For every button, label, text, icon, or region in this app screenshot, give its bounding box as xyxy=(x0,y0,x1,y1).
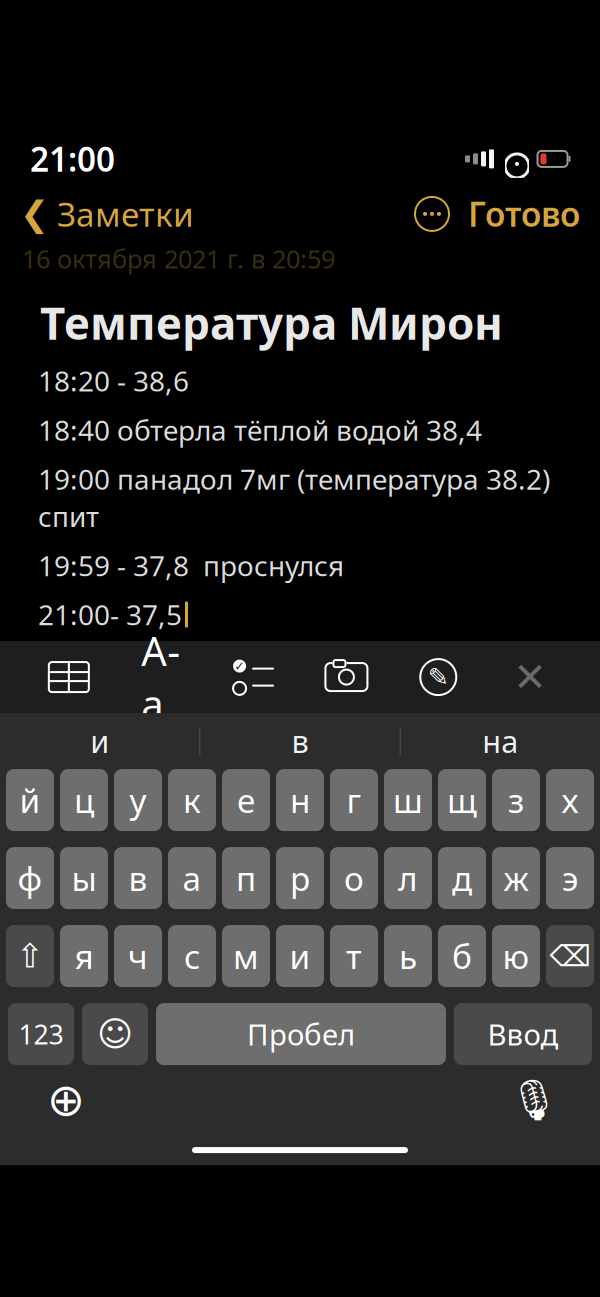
button[interactable]: Список xyxy=(231,659,277,695)
staticText: ч xyxy=(128,934,148,978)
button[interactable]: з xyxy=(492,769,540,831)
staticText: р xyxy=(290,856,310,900)
staticText: Готово xyxy=(468,192,580,236)
staticText: 21:00- 37,5 xyxy=(38,596,182,633)
button[interactable]: д xyxy=(438,847,486,909)
button[interactable]: и xyxy=(276,925,324,987)
button[interactable]: Формат xyxy=(138,658,184,696)
button[interactable]: Сменить язык xyxy=(38,1072,94,1128)
staticText: н xyxy=(290,778,310,822)
staticText: я xyxy=(74,934,93,978)
staticText: ⇧ xyxy=(16,937,44,975)
button[interactable]: и xyxy=(0,713,199,769)
staticText: ❮ xyxy=(20,194,49,233)
staticText: ю xyxy=(502,934,529,978)
staticText: х xyxy=(561,778,578,822)
button[interactable]: л xyxy=(384,847,432,909)
staticText: Заметки xyxy=(57,192,194,236)
staticText: ⊕ xyxy=(47,1074,85,1126)
button[interactable]: ж xyxy=(492,847,540,909)
staticText: на xyxy=(482,721,518,761)
staticText: 16 октября 2021 г. в 20:59 xyxy=(22,242,335,275)
button[interactable]: щ xyxy=(438,769,486,831)
button[interactable]: п xyxy=(222,847,270,909)
button[interactable]: Готово xyxy=(454,186,580,242)
button[interactable]: на xyxy=(401,713,600,769)
staticText: у xyxy=(129,778,146,822)
button[interactable]: Камера xyxy=(323,659,369,695)
button[interactable]: в xyxy=(200,713,400,769)
staticText: ы xyxy=(71,856,96,900)
button[interactable]: в xyxy=(114,847,162,909)
staticText: й xyxy=(19,778,40,822)
button[interactable]: р xyxy=(276,847,324,909)
button[interactable]: н xyxy=(276,769,324,831)
staticText: в xyxy=(291,721,308,761)
staticText: м xyxy=(233,934,259,978)
staticText: 123 xyxy=(18,1016,63,1052)
button[interactable]: о xyxy=(330,847,378,909)
button[interactable]: Разметка xyxy=(416,658,460,696)
button[interactable]: Пробел xyxy=(156,1003,446,1065)
staticText: Ввод xyxy=(487,1015,558,1054)
staticText: и xyxy=(289,934,310,978)
staticText: а xyxy=(182,856,201,900)
button[interactable]: ⇧ xyxy=(6,925,54,987)
staticText: 19:00 панадол 7мг (температура 38.2) спи… xyxy=(38,460,550,535)
button[interactable]: ☺ xyxy=(82,1003,148,1065)
button[interactable]: Ввод xyxy=(454,1003,592,1065)
staticText: ⌫ xyxy=(549,939,590,973)
button[interactable]: е xyxy=(222,769,270,831)
button[interactable]: Диктовка xyxy=(506,1072,562,1128)
button[interactable]: г xyxy=(330,769,378,831)
staticText: ф xyxy=(17,856,42,900)
button[interactable]: Закрыть xyxy=(507,658,553,696)
staticText: в xyxy=(128,856,147,900)
button[interactable]: ц xyxy=(60,769,108,831)
staticText: и xyxy=(90,721,109,761)
button[interactable]: я xyxy=(60,925,108,987)
staticText: ж xyxy=(503,856,528,900)
staticText: о xyxy=(344,856,364,900)
staticText: э xyxy=(562,856,578,900)
button[interactable]: й xyxy=(6,769,54,831)
button[interactable]: ⌫ xyxy=(546,925,594,987)
button[interactable]: м xyxy=(222,925,270,987)
button[interactable]: ь xyxy=(384,925,432,987)
button[interactable]: б xyxy=(438,925,486,987)
staticText: ц xyxy=(74,778,94,822)
staticText: ☺ xyxy=(97,1014,133,1054)
button[interactable]: ы xyxy=(60,847,108,909)
button[interactable]: ч xyxy=(114,925,162,987)
button[interactable]: с xyxy=(168,925,216,987)
staticText: с xyxy=(184,934,200,978)
staticText: ь xyxy=(399,934,417,978)
staticText: з xyxy=(508,778,524,822)
button[interactable]: у xyxy=(114,769,162,831)
button[interactable]: т xyxy=(330,925,378,987)
staticText: т xyxy=(346,934,362,978)
staticText: 18:20 - 38,6 xyxy=(38,362,189,399)
staticText: к xyxy=(183,778,201,822)
staticText: Пробел xyxy=(247,1015,355,1054)
staticText: Aa xyxy=(141,624,180,730)
button[interactable]: х xyxy=(546,769,594,831)
staticText: 21:00 xyxy=(30,137,115,181)
button[interactable]: к xyxy=(168,769,216,831)
button[interactable]: ф xyxy=(6,847,54,909)
staticText: г xyxy=(346,778,361,822)
staticText: 19:59 - 37,8 проснулся xyxy=(38,547,344,584)
button[interactable]: ❮ xyxy=(20,186,194,242)
button[interactable]: э xyxy=(546,847,594,909)
staticText: Температура Мирон xyxy=(40,294,503,352)
staticText: б xyxy=(452,934,472,978)
button[interactable]: а xyxy=(168,847,216,909)
button[interactable]: 123 xyxy=(8,1003,74,1065)
staticText: е xyxy=(237,778,255,822)
staticText: ✎ xyxy=(428,663,449,691)
button[interactable]: Таблица xyxy=(47,660,91,694)
button[interactable]: ш xyxy=(384,769,432,831)
staticText: 🎙 xyxy=(508,1077,559,1123)
button[interactable]: ю xyxy=(492,925,540,987)
button[interactable]: Дополнительно xyxy=(410,192,454,236)
